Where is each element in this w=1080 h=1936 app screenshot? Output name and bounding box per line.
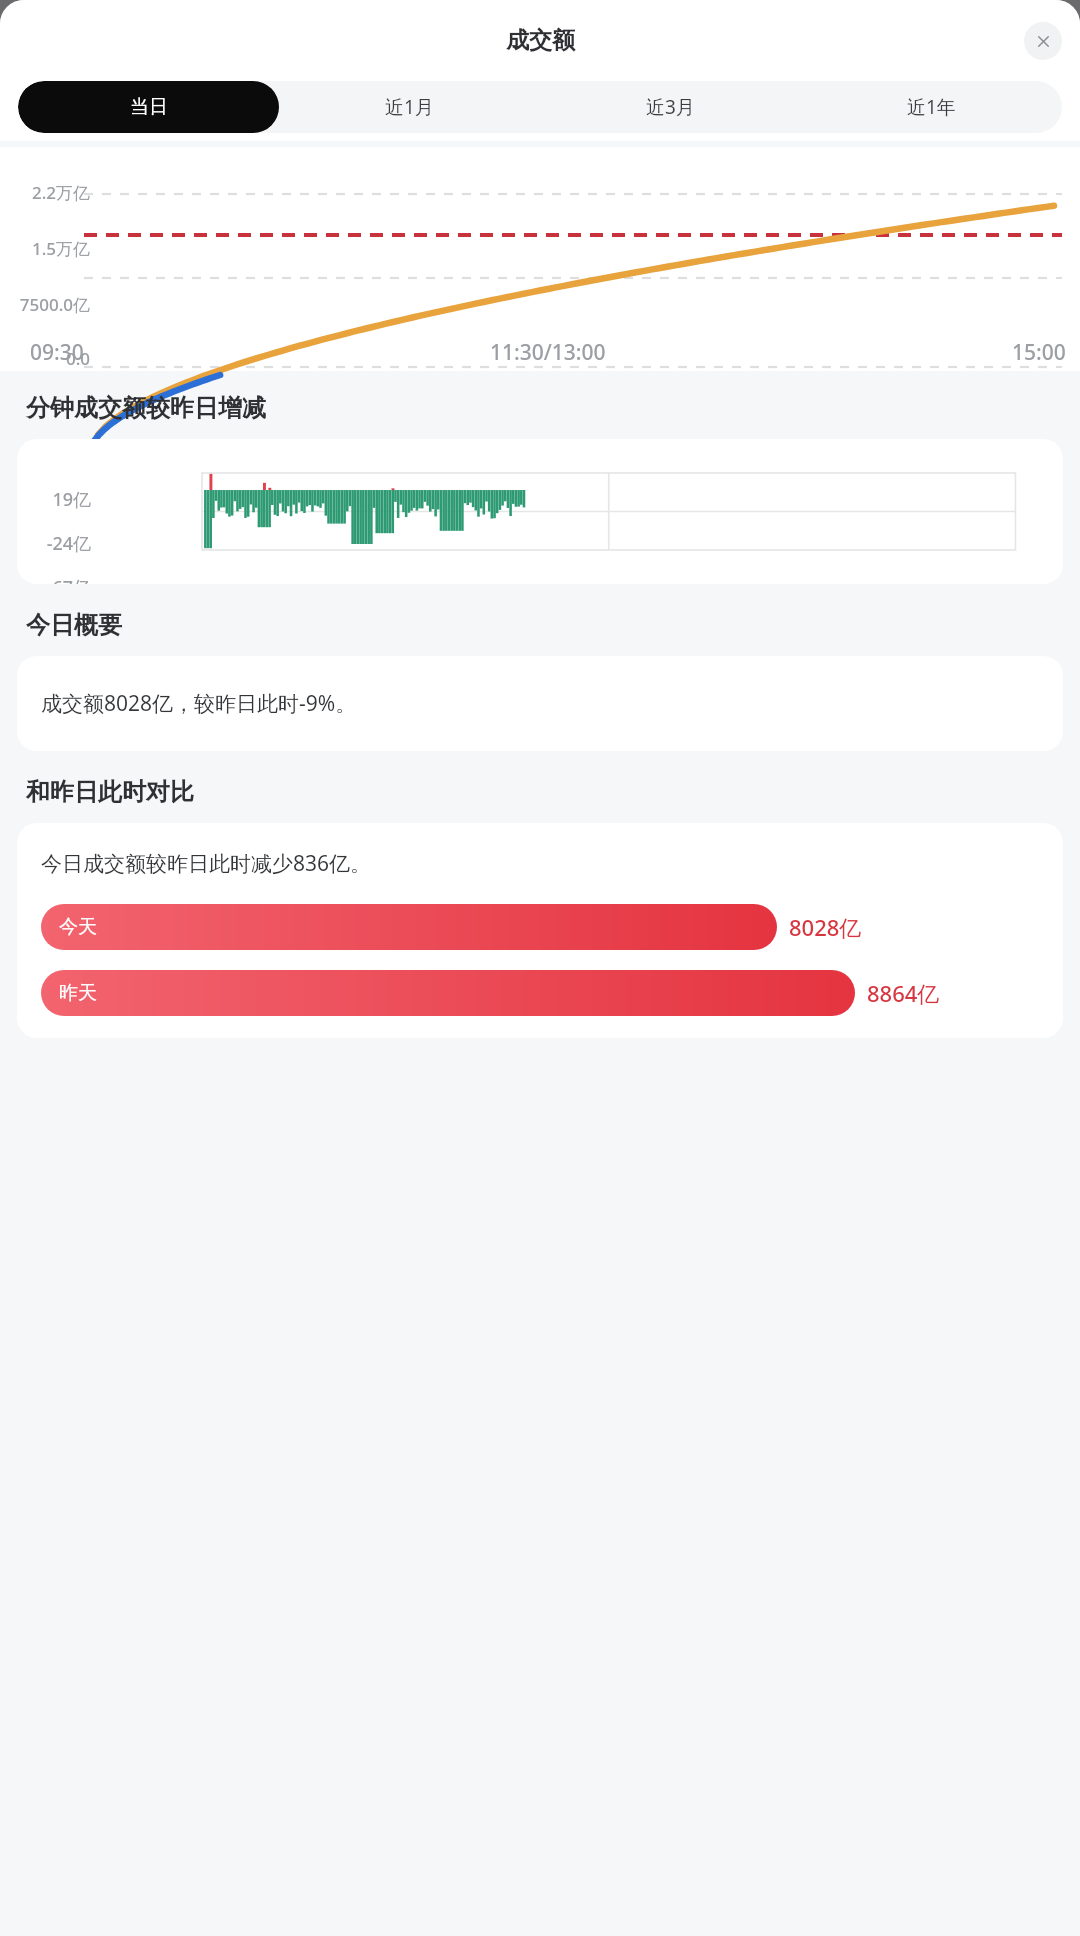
staticText: -67亿 [17, 575, 91, 584]
staticText: 19亿 [17, 487, 91, 512]
button[interactable]: 当日 [18, 81, 279, 133]
button[interactable]: 成交额8028亿，较昨日此时-9%。 [17, 656, 1063, 751]
staticText: 1.5万亿 [0, 237, 90, 260]
staticText: 昨天 [59, 981, 97, 1005]
staticText: 近3月 [646, 94, 695, 120]
staticText: 今日概要 [26, 610, 122, 640]
staticText: 09:30 [30, 338, 84, 367]
staticText: 近1年 [907, 94, 956, 120]
staticText: 8864亿 [867, 978, 940, 1008]
staticText: 和昨日此时对比 [26, 777, 194, 807]
staticText: 当日 [130, 95, 168, 119]
staticText: -24亿 [17, 531, 91, 556]
staticText: 成交额8028亿，较昨日此时-9%。 [41, 689, 357, 718]
staticText: 近1月 [385, 94, 434, 120]
staticText: 11:30/13:00 [490, 338, 606, 367]
button[interactable]: 近1年 [801, 81, 1062, 133]
staticText: 2.2万亿 [0, 181, 90, 204]
staticText: 今天 [59, 915, 97, 939]
button[interactable]: 今天 [41, 904, 1043, 950]
staticText: 8028亿 [789, 912, 862, 942]
button[interactable]: Close [1024, 22, 1062, 60]
staticText: 今日成交额较昨日此时减少836亿。 [41, 849, 372, 878]
staticText: 成交额 [506, 26, 575, 55]
button[interactable]: 近1月 [279, 81, 540, 133]
button[interactable]: 近3月 [540, 81, 801, 133]
button[interactable]: 昨天 [41, 970, 1043, 1016]
staticText: 0.0 [0, 347, 90, 370]
staticText: 分钟成交额较昨日增减 [26, 393, 266, 423]
staticText: 7500.0亿 [0, 293, 90, 316]
staticText: 15:00 [1012, 338, 1066, 367]
